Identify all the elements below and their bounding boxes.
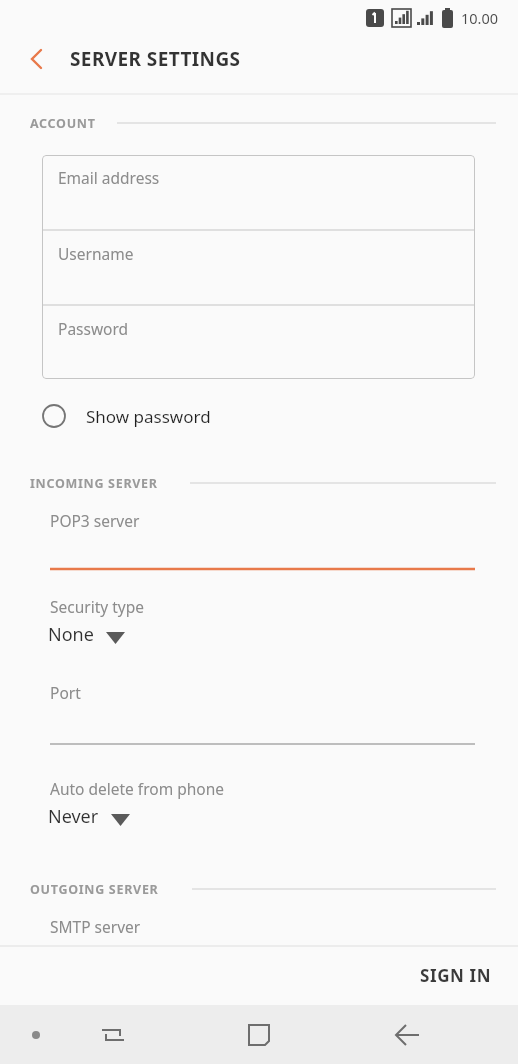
staticText: ACCOUNT: [30, 115, 96, 132]
staticText: None: [48, 622, 94, 647]
button[interactable]: Username: [42, 231, 475, 305]
button[interactable]: Port: [0, 678, 518, 746]
staticText: SMTP server: [50, 916, 141, 937]
button[interactable]: Switch apps: [87, 1009, 139, 1061]
button[interactable]: SIGN IN: [412, 954, 500, 997]
staticText: Username: [58, 243, 134, 264]
button[interactable]: Back: [382, 1009, 434, 1061]
button[interactable]: Home: [233, 1009, 285, 1061]
button[interactable]: POP3 server: [0, 505, 518, 571]
button[interactable]: Email address: [42, 155, 475, 230]
staticText: Security type: [50, 596, 144, 617]
button[interactable]: Security type: [0, 592, 518, 658]
staticText: Never: [48, 804, 99, 829]
button[interactable]: Show password: [0, 392, 518, 440]
staticText: Auto delete from phone: [50, 778, 225, 799]
staticText: SERVER SETTINGS: [70, 46, 241, 72]
staticText: Port: [50, 682, 81, 703]
staticText: Email address: [58, 167, 160, 188]
button[interactable]: SMTP server: [0, 912, 518, 946]
staticText: OUTGOING SERVER: [30, 881, 159, 898]
staticText: INCOMING SERVER: [30, 475, 158, 492]
button[interactable]: Menu: [10, 1009, 62, 1061]
staticText: 10.00: [461, 8, 499, 28]
button[interactable]: Back: [10, 33, 62, 85]
staticText: Password: [58, 318, 129, 339]
button[interactable]: Auto delete from phone: [0, 774, 518, 840]
button[interactable]: Password: [42, 306, 475, 379]
staticText: Show password: [86, 405, 211, 428]
staticText: SIGN IN: [420, 964, 492, 987]
staticText: POP3 server: [50, 510, 140, 531]
